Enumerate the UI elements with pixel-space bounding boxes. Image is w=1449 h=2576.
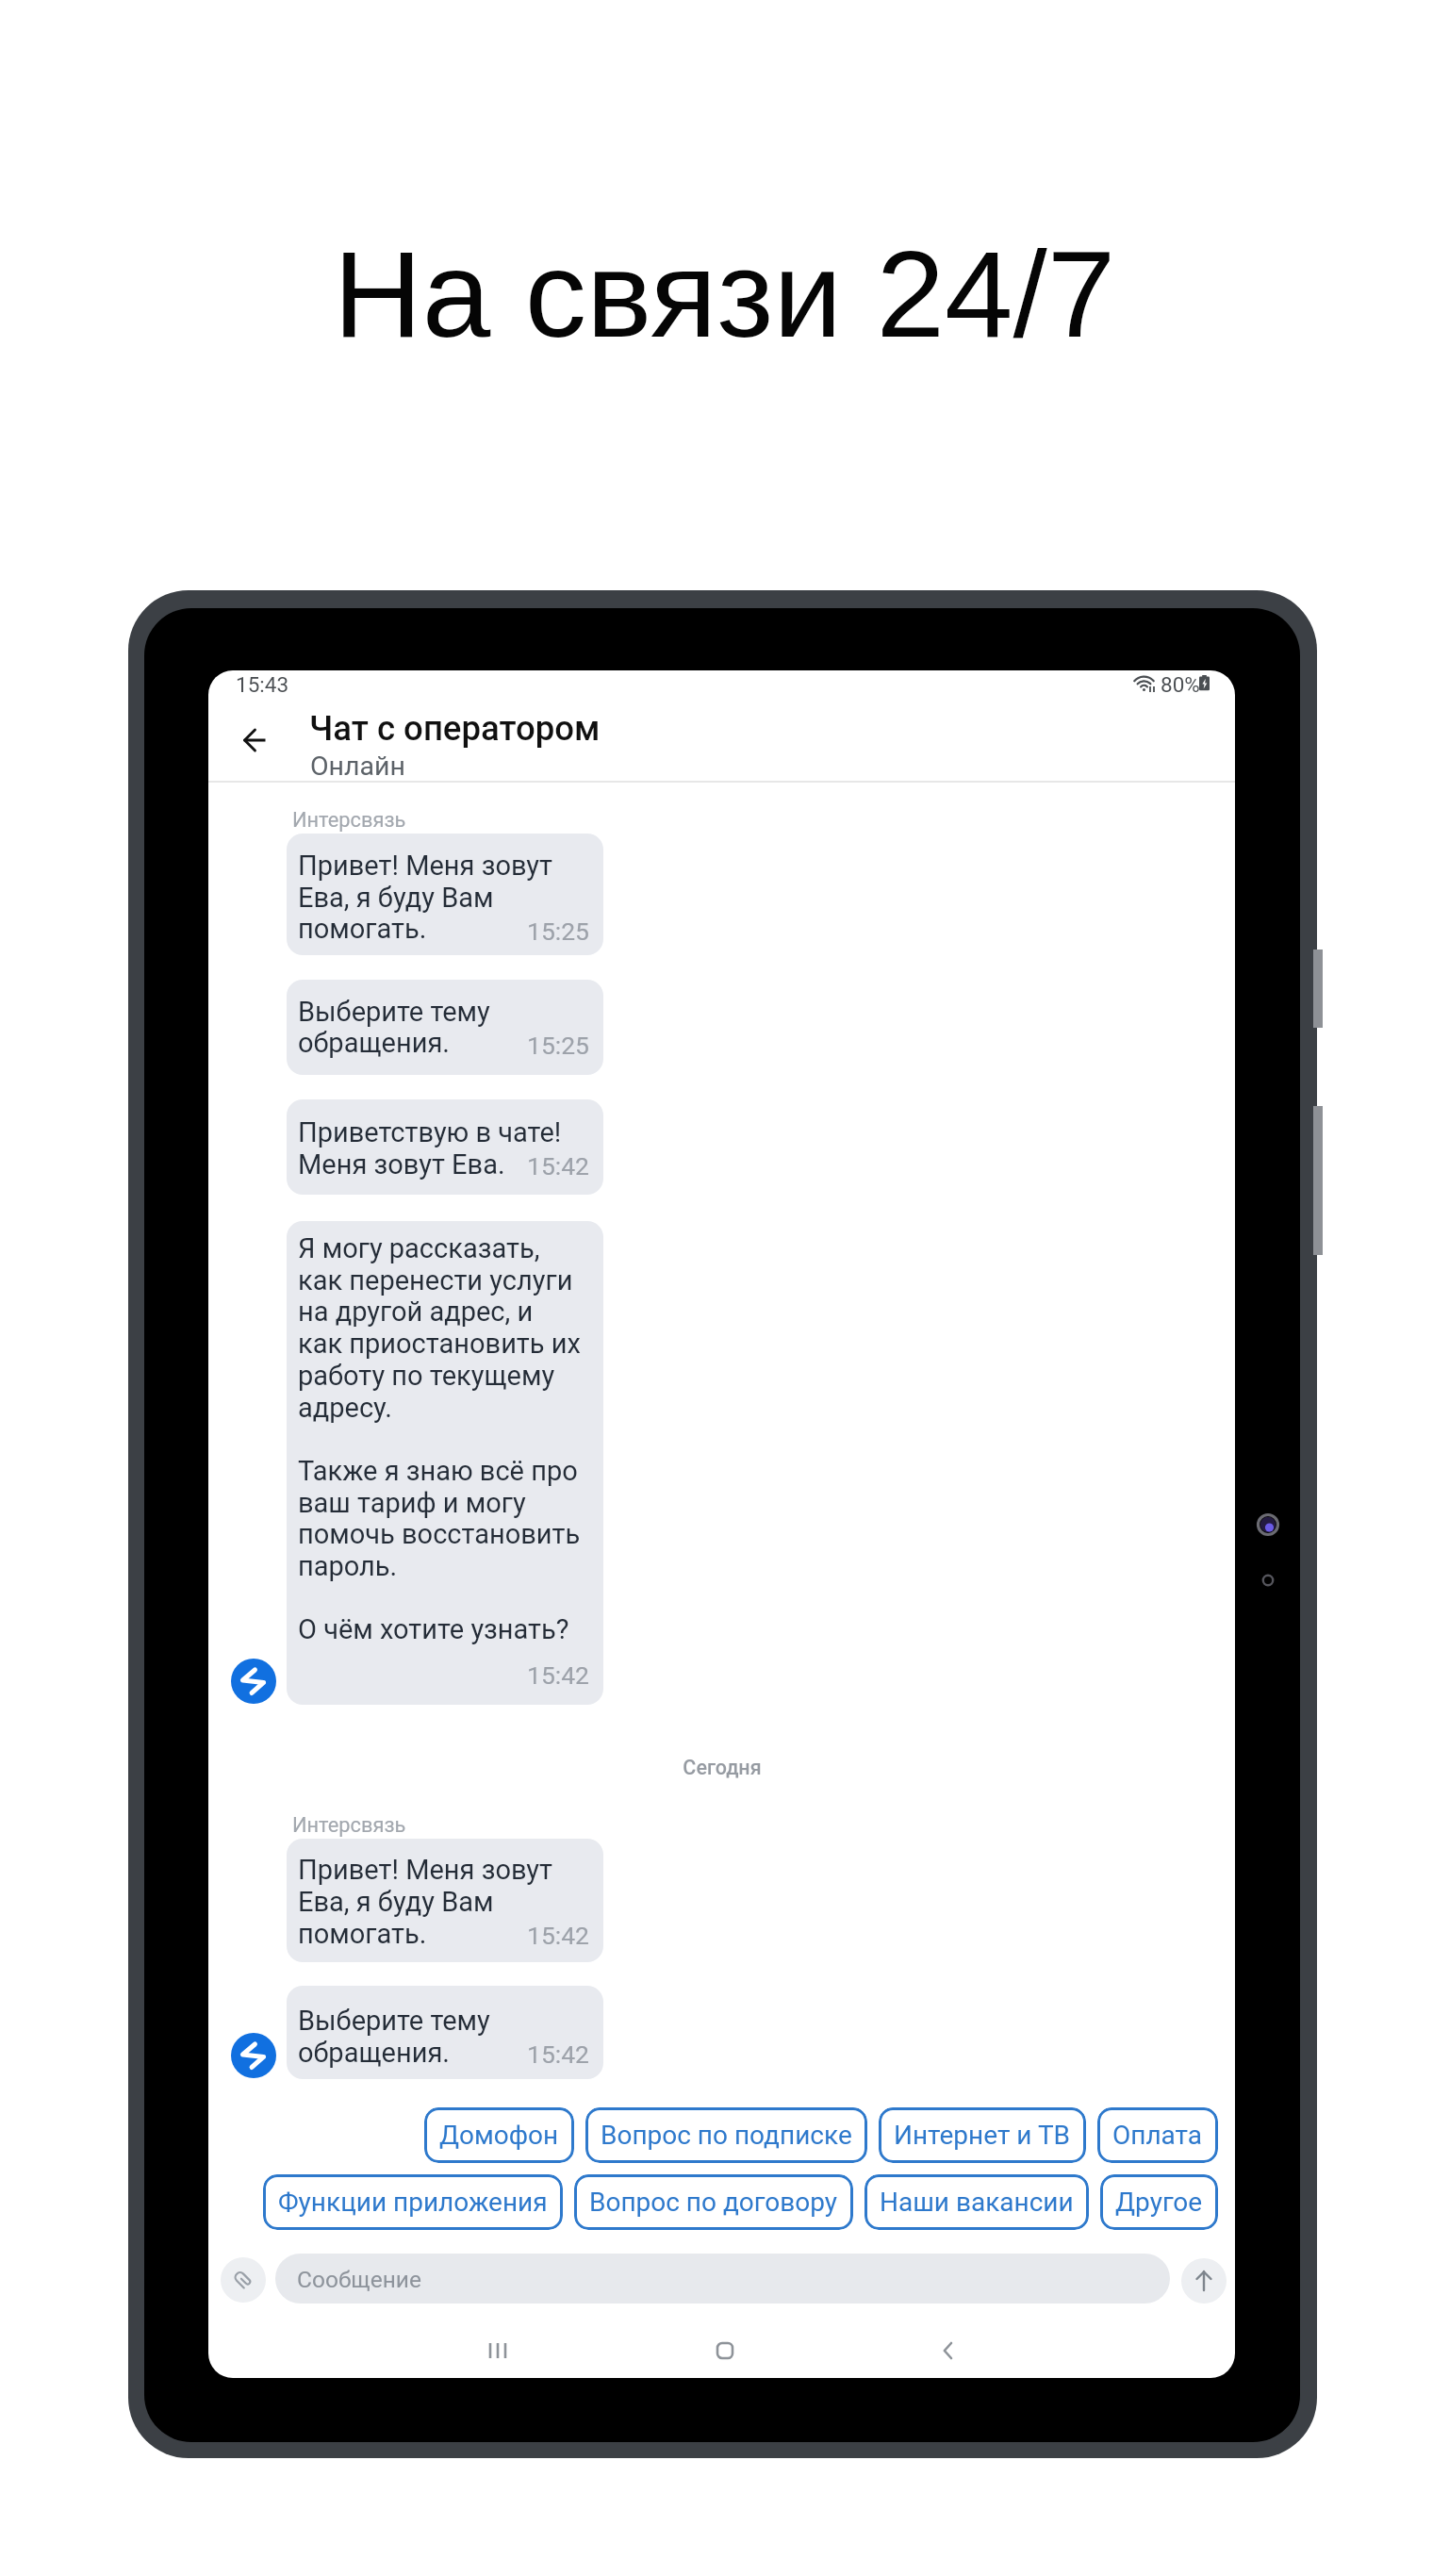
staticText: как приостановить их — [298, 1328, 581, 1360]
staticText: На связи 24/7 — [0, 225, 1449, 363]
staticText: Чат с оператором — [309, 708, 601, 749]
staticText: Сегодня — [486, 1756, 958, 1779]
button[interactable] — [287, 834, 603, 955]
staticText: помогать. — [298, 913, 427, 945]
button[interactable] — [287, 1986, 603, 2079]
button[interactable]: Назад — [924, 2326, 973, 2375]
staticText: О чём хотите узнать? — [298, 1613, 569, 1645]
staticText: Наши вакансии — [880, 2187, 1074, 2218]
staticText: Оплата — [1112, 2120, 1203, 2151]
staticText: 15:25 — [212, 916, 589, 946]
staticText: 80% — [1161, 672, 1200, 697]
staticText: 15:42 — [212, 1151, 589, 1181]
staticText: Интерсвязь — [292, 808, 406, 833]
button[interactable] — [275, 2254, 1170, 2304]
staticText: Вопрос по подписке — [601, 2120, 852, 2151]
staticText: Выберите тему — [298, 2005, 490, 2037]
button[interactable]: Интернет и ТВ — [879, 2107, 1086, 2163]
staticText: Онлайн — [310, 751, 405, 782]
staticText: обращения. — [298, 2037, 450, 2069]
staticText: Выберите тему — [298, 996, 490, 1028]
staticText: как перенести услуги — [298, 1264, 573, 1296]
button[interactable]: Функции приложения — [263, 2174, 563, 2230]
staticText: 15:25 — [212, 1031, 589, 1060]
staticText: Интернет и ТВ — [894, 2120, 1071, 2151]
button[interactable]: Интерсвязь — [231, 2033, 276, 2078]
button[interactable]: Отправить — [1181, 2258, 1227, 2304]
button[interactable] — [302, 705, 792, 779]
staticText: 15:42 — [212, 2039, 589, 2069]
button[interactable]: Домофон — [424, 2107, 574, 2163]
staticText: Ева, я буду Вам — [298, 882, 494, 914]
button[interactable]: Наши вакансии — [864, 2174, 1089, 2230]
staticText: Меня зовут Ева. — [298, 1148, 505, 1181]
staticText: Другое — [1115, 2187, 1203, 2218]
button[interactable]: Другое — [1100, 2174, 1218, 2230]
button[interactable]: Вопрос по подписке — [585, 2107, 867, 2163]
button[interactable] — [287, 980, 603, 1075]
staticText: на другой адрес, и — [298, 1296, 534, 1328]
button[interactable]: Прикрепить файл — [221, 2257, 266, 2303]
staticText: Привет! Меня зовут — [298, 850, 553, 882]
staticText: адресу. — [298, 1392, 392, 1424]
button[interactable]: Вопрос по договору — [574, 2174, 853, 2230]
staticText: 15:42 — [212, 1660, 589, 1690]
button[interactable] — [287, 1099, 603, 1195]
staticText: Я могу рассказать, — [298, 1232, 540, 1264]
staticText: пароль. — [298, 1550, 398, 1582]
staticText: 15:42 — [212, 1921, 589, 1950]
button[interactable]: Недавние приложения — [473, 2326, 522, 2375]
staticText: 15:43 — [236, 672, 289, 697]
staticText: Ева, я буду Вам — [298, 1886, 494, 1918]
staticText: работу по текущему — [298, 1360, 555, 1392]
staticText: Приветствую в чате! — [298, 1116, 562, 1148]
staticText: Интерсвязь — [292, 1813, 406, 1838]
staticText: ваш тариф и могу — [298, 1487, 526, 1519]
staticText: Домофон — [439, 2120, 559, 2151]
staticText: Привет! Меня зовут — [298, 1854, 553, 1886]
staticText: Сообщение — [297, 2266, 421, 2293]
staticText: обращения. — [298, 1027, 450, 1059]
staticText: Функции приложения — [278, 2187, 548, 2218]
staticText: Также я знаю всё про — [298, 1455, 578, 1487]
staticText: помогать. — [298, 1918, 427, 1950]
button[interactable] — [287, 1839, 603, 1962]
button[interactable]: Оплата — [1097, 2107, 1218, 2163]
button[interactable]: Назад — [234, 719, 277, 763]
staticText: Вопрос по договору — [589, 2187, 838, 2218]
button[interactable]: Интерсвязь — [231, 1659, 276, 1704]
staticText: помочь восстановить — [298, 1518, 581, 1550]
button[interactable] — [287, 1221, 603, 1705]
button[interactable]: Главный экран — [700, 2326, 749, 2375]
